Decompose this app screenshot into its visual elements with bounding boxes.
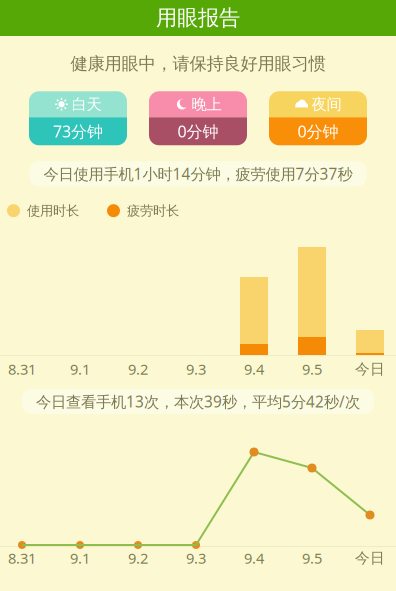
staticText: 9.4 — [244, 548, 264, 568]
staticText: 用眼报告 — [156, 5, 240, 31]
staticText: 0分钟 — [297, 120, 338, 142]
staticText: 9.5 — [302, 548, 322, 568]
staticText: 疲劳时长 — [127, 202, 179, 219]
staticText: 晚上 — [191, 95, 221, 114]
staticText: 今日 — [355, 360, 385, 378]
staticText: 8.31 — [8, 359, 36, 379]
staticText: 今日 — [355, 549, 385, 567]
staticText: 9.1 — [70, 359, 90, 379]
button[interactable]: 晚上 — [149, 91, 247, 145]
button[interactable]: 白天 — [29, 91, 127, 145]
staticText: 9.4 — [244, 359, 264, 379]
staticText: 9.3 — [186, 359, 206, 379]
staticText: 9.3 — [186, 548, 206, 568]
staticText: 9.2 — [128, 548, 148, 568]
staticText: 73分钟 — [53, 120, 103, 142]
staticText: 9.5 — [302, 359, 322, 379]
staticText: 9.1 — [70, 548, 90, 568]
staticText: 健康用眼中，请保持良好用眼习惯 — [70, 53, 325, 74]
staticText: 使用时长 — [27, 202, 79, 219]
staticText: 9.2 — [128, 359, 148, 379]
staticText: 0分钟 — [177, 120, 218, 142]
staticText: 夜间 — [311, 95, 341, 114]
staticText: 白天 — [71, 95, 101, 114]
staticText: 今日使用手机1小时14分钟，疲劳使用7分37秒 — [43, 163, 352, 184]
staticText: 8.31 — [8, 548, 36, 568]
staticText: 今日查看手机13次，本次39秒，平均5分42秒/次 — [36, 391, 360, 412]
button[interactable]: 夜间 — [269, 91, 367, 145]
